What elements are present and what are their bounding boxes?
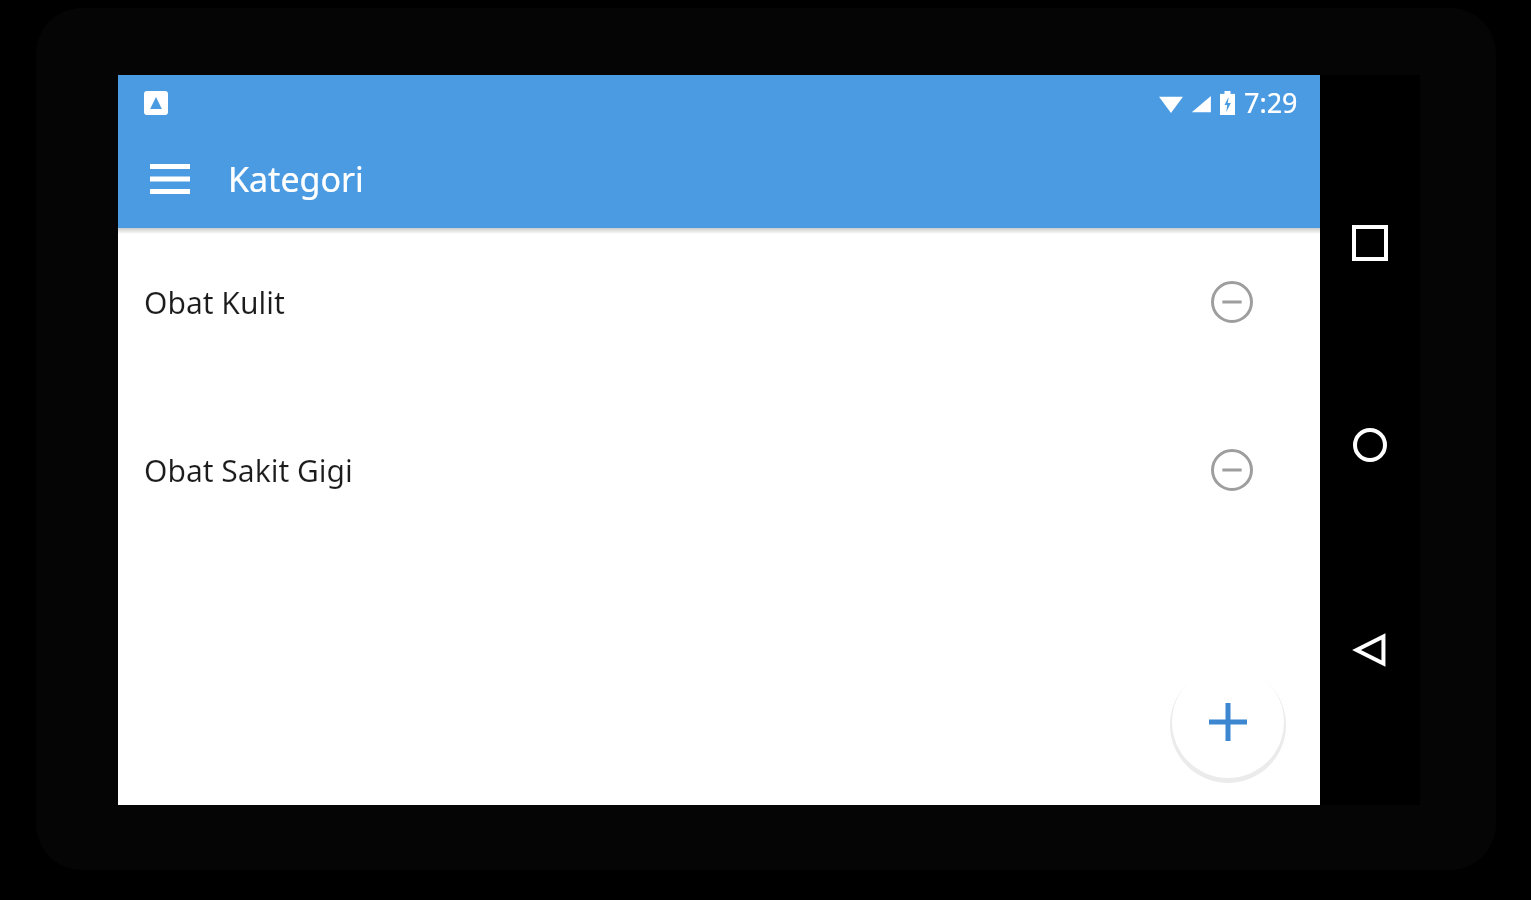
button[interactable]: Back <box>1335 615 1405 685</box>
button[interactable]: Remove Obat Sakit Gigi <box>1202 440 1262 500</box>
staticText: Obat Sakit Gigi <box>144 450 353 491</box>
staticText: 7:29 <box>1244 84 1298 121</box>
button[interactable]: Recent apps <box>1335 208 1405 278</box>
button[interactable]: Remove Obat Kulit <box>1202 272 1262 332</box>
staticText: Obat Kulit <box>144 282 285 323</box>
button[interactable]: Add category <box>1172 666 1284 778</box>
button[interactable]: Home <box>1335 410 1405 480</box>
button[interactable]: Obat Sakit Gigi <box>118 436 1320 504</box>
button[interactable]: Open navigation menu <box>136 145 204 213</box>
button[interactable]: Obat Kulit <box>118 268 1320 336</box>
staticText: Kategori <box>228 156 364 202</box>
